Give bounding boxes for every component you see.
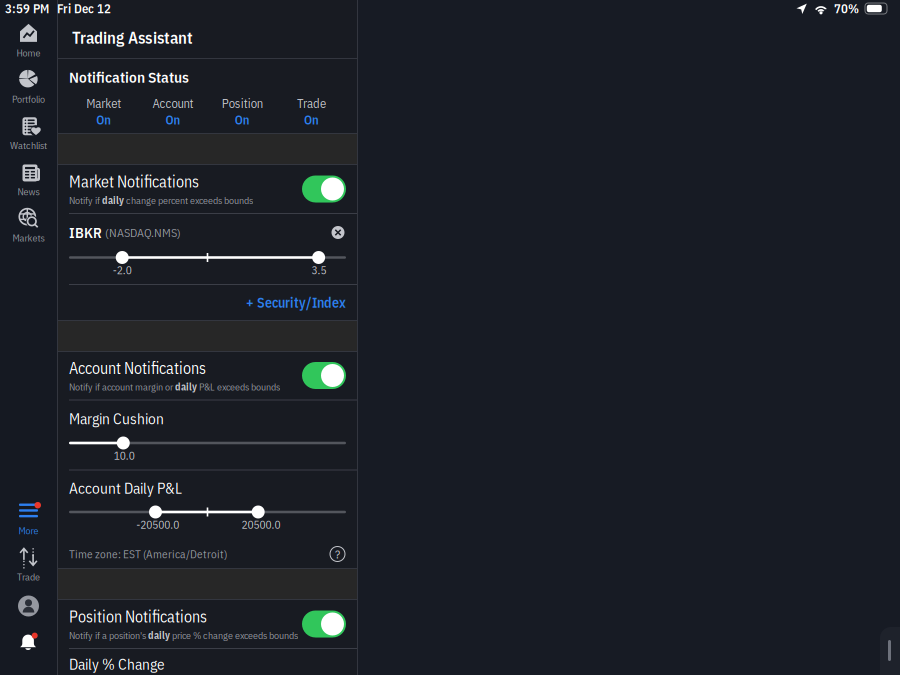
staticText: IBKR xyxy=(69,223,102,242)
staticText: 10.0 xyxy=(114,448,135,463)
button[interactable]: Position Notifications xyxy=(302,610,346,637)
staticText: ? xyxy=(335,546,340,562)
button[interactable]: Trade xyxy=(0,542,57,588)
staticText: daily xyxy=(175,380,197,393)
button[interactable]: Help xyxy=(329,545,346,562)
staticText: price % change exceeds bounds xyxy=(170,629,298,642)
staticText: Notify if xyxy=(69,194,102,207)
staticText: -2.0 xyxy=(113,263,132,277)
staticText: 70% xyxy=(834,0,859,17)
staticText: Notify if account margin or xyxy=(69,380,175,393)
button[interactable]: Expand panel xyxy=(880,627,900,675)
staticText: -20500.0 xyxy=(136,517,179,532)
staticText: Account Notifications xyxy=(69,357,206,378)
staticText: (NASDAQ.NMS) xyxy=(102,225,181,240)
staticText: change percent exceeds bounds xyxy=(124,194,253,207)
button[interactable]: Remove IBKR xyxy=(330,224,346,240)
staticText: 20500.0 xyxy=(241,517,280,532)
staticText: Trade xyxy=(17,570,40,583)
button[interactable]: News xyxy=(0,157,57,203)
staticText: daily xyxy=(102,194,124,207)
staticText: Markets xyxy=(12,231,44,244)
staticText: News xyxy=(17,185,39,198)
button[interactable]: More xyxy=(0,496,57,542)
button[interactable]: Account xyxy=(0,588,57,624)
staticText: Account xyxy=(152,95,193,111)
staticText: Position xyxy=(222,95,263,111)
staticText: 3:59 PM xyxy=(5,0,49,17)
staticText: Home xyxy=(16,46,40,59)
staticText: Time zone: EST (America/Detroit) xyxy=(69,547,227,561)
staticText: Account Daily P&L xyxy=(69,478,182,498)
staticText: On xyxy=(96,111,111,128)
staticText: More xyxy=(18,524,38,537)
button[interactable]: Watchlist xyxy=(0,110,57,157)
staticText: On xyxy=(235,111,250,128)
staticText: Market xyxy=(86,95,121,111)
staticText: Trading Assistant xyxy=(72,27,193,48)
button[interactable]: + Security/Index xyxy=(246,285,357,320)
staticText: Portfolio xyxy=(12,92,45,105)
staticText: Trade xyxy=(297,95,326,111)
button[interactable]: Portfolio xyxy=(0,64,57,110)
button[interactable]: Market Notifications xyxy=(302,175,346,202)
staticText: daily xyxy=(148,629,170,642)
staticText: Market Notifications xyxy=(69,171,199,192)
button[interactable]: Home xyxy=(0,18,57,64)
button[interactable]: Markets xyxy=(0,203,57,249)
staticText: + Security/Index xyxy=(246,293,346,312)
staticText: Daily % Change xyxy=(69,654,165,674)
staticText: Position Notifications xyxy=(69,606,207,627)
staticText: Fri Dec 12 xyxy=(57,0,111,17)
button[interactable]: Account Notifications xyxy=(302,362,346,389)
staticText: Notify if a position's xyxy=(69,629,148,642)
staticText: 3.5 xyxy=(311,263,326,277)
staticText: On xyxy=(304,111,319,128)
staticText: Margin Cushion xyxy=(69,408,164,428)
staticText: Notification Status xyxy=(69,67,189,87)
staticText: P&L exceeds bounds xyxy=(197,380,280,393)
button[interactable]: Alerts xyxy=(0,624,57,660)
staticText: Watchlist xyxy=(10,139,47,152)
staticText: On xyxy=(165,111,180,128)
